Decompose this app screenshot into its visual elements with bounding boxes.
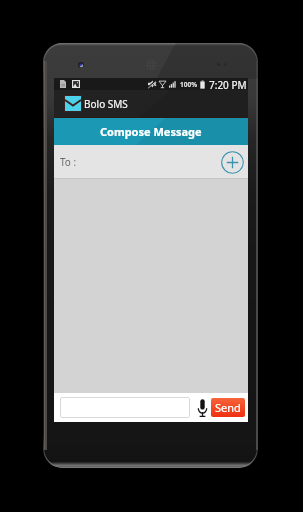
- button[interactable]: Add recipient: [220, 150, 244, 174]
- staticText: 7:20 PM: [209, 78, 247, 90]
- staticText: Send: [215, 400, 241, 415]
- staticText: 100%: [180, 80, 198, 89]
- button[interactable]: Send: [211, 398, 245, 417]
- staticText: Compose Message: [100, 124, 202, 139]
- staticText: To :: [60, 155, 77, 169]
- button[interactable]: Voice input: [197, 398, 208, 418]
- button[interactable]: Message input: [60, 397, 190, 418]
- staticText: Bolo SMS: [84, 97, 128, 111]
